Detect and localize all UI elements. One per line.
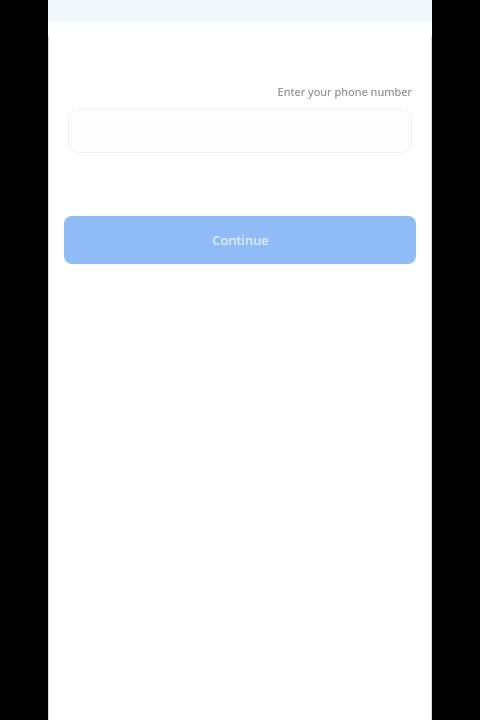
button[interactable]: Continue	[64, 216, 416, 264]
staticText: Enter your phone number	[277, 84, 412, 99]
staticText: Continue	[212, 231, 269, 249]
